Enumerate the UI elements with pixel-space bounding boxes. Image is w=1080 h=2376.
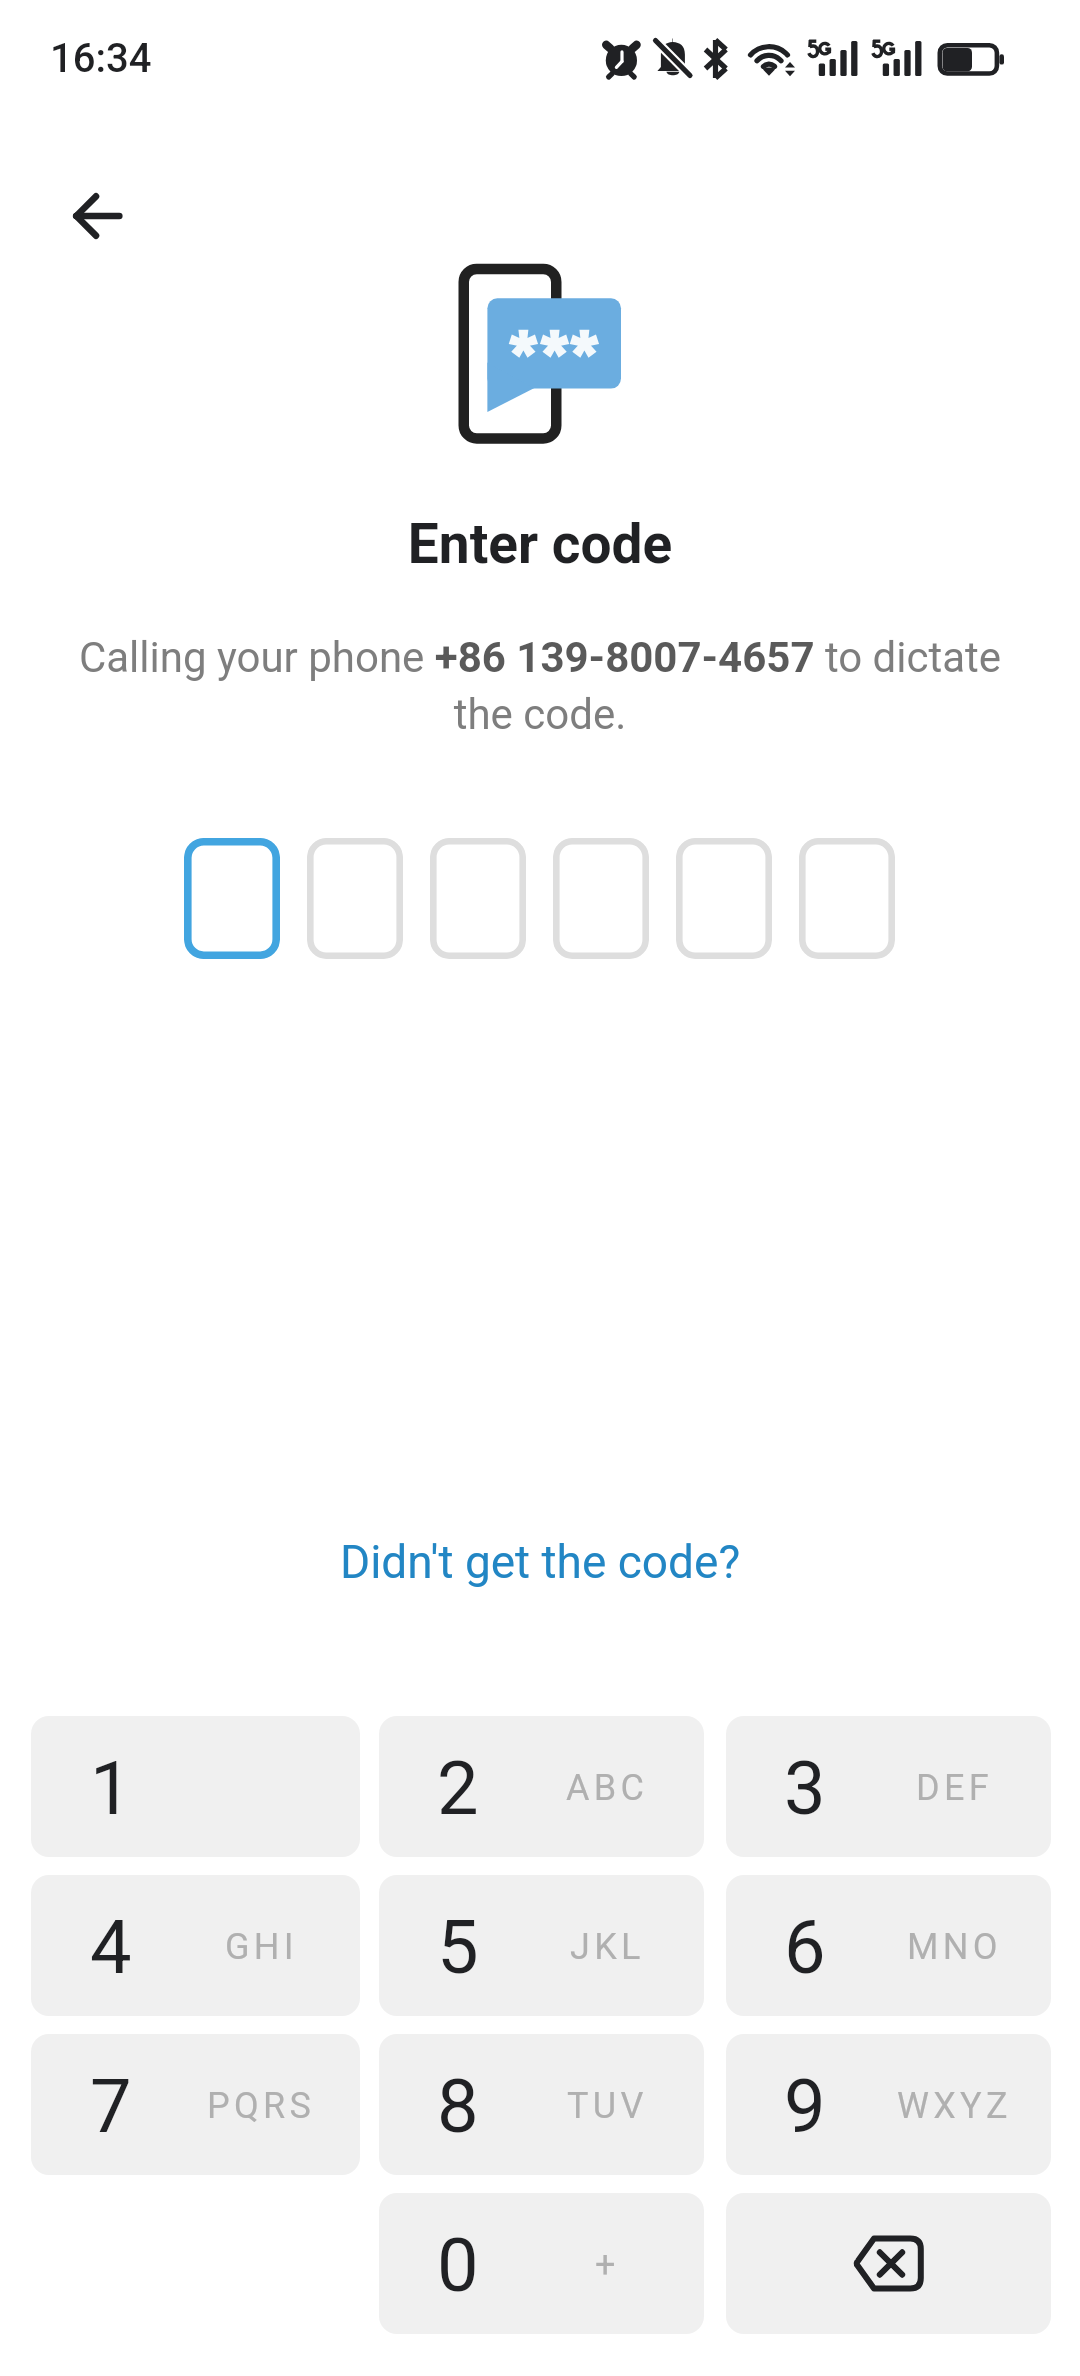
staticText: 6 <box>784 1904 826 1991</box>
staticText: Enter code <box>0 512 1080 576</box>
staticText: DEF <box>916 1767 993 1809</box>
staticText: MNO <box>907 1926 1002 1968</box>
staticText: WXYZ <box>897 2085 1012 2127</box>
button[interactable] <box>553 838 649 959</box>
button[interactable]: Backspace <box>726 2193 1051 2334</box>
staticText: 8 <box>437 2063 479 2150</box>
button[interactable] <box>799 838 895 959</box>
staticText: ABC <box>566 1767 649 1809</box>
button[interactable]: Didn't get the code? <box>316 1521 765 1603</box>
button[interactable]: 7 <box>31 2034 360 2175</box>
button[interactable] <box>307 838 403 959</box>
staticText: 16:34 <box>50 35 152 82</box>
staticText: TUV <box>567 2085 648 2127</box>
button[interactable] <box>430 838 526 959</box>
button[interactable]: 6 <box>726 1875 1051 2016</box>
button[interactable]: 1 <box>31 1716 360 1857</box>
staticText: Calling your phone +86 139-8007-4657 to … <box>62 633 1018 739</box>
button[interactable]: 3 <box>726 1716 1051 1857</box>
button[interactable] <box>676 838 772 959</box>
staticText: 1 <box>90 1745 132 1832</box>
staticText: 2 <box>437 1745 479 1832</box>
button[interactable]: 4 <box>31 1875 360 2016</box>
button[interactable]: 5 <box>379 1875 704 2016</box>
staticText: 9 <box>784 2063 826 2150</box>
staticText: 4 <box>90 1904 132 1991</box>
button[interactable]: Back <box>52 172 140 260</box>
button[interactable]: 2 <box>379 1716 704 1857</box>
staticText: 0 <box>437 2222 479 2309</box>
button[interactable]: 0 <box>379 2193 704 2334</box>
staticText: PQRS <box>207 2085 316 2127</box>
staticText: 5 <box>437 1904 479 1991</box>
staticText: Didn't get the code? <box>340 1535 741 1589</box>
staticText: + <box>595 2244 620 2286</box>
button[interactable] <box>184 838 280 959</box>
staticText: 7 <box>90 2063 132 2150</box>
button[interactable]: 8 <box>379 2034 704 2175</box>
staticText: GHI <box>225 1926 298 1968</box>
button[interactable]: 9 <box>726 2034 1051 2175</box>
staticText: JKL <box>570 1926 645 1968</box>
staticText: 3 <box>784 1745 826 1832</box>
